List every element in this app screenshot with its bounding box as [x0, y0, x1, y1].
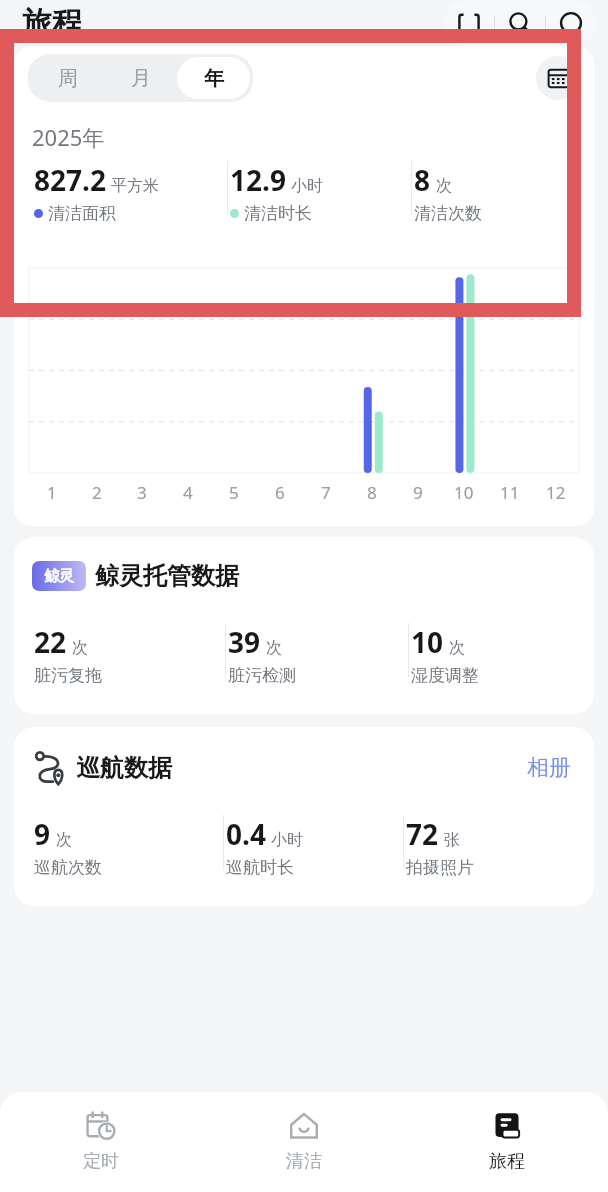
staticText: 9 — [413, 481, 423, 504]
button[interactable]: 旅程 — [405, 1092, 608, 1192]
staticText: 次 — [56, 830, 72, 850]
staticText: 相册 — [527, 754, 571, 782]
staticText: 4 — [183, 481, 193, 504]
button[interactable]: 周 — [31, 57, 104, 99]
button[interactable]: Profile — [546, 0, 596, 46]
staticText: 8 — [367, 481, 377, 504]
staticText: 平方米 — [111, 176, 159, 196]
staticText: 旅程 — [22, 4, 82, 42]
staticText: 巡航时长 — [226, 857, 294, 878]
staticText: 次 — [436, 176, 452, 196]
staticText: 巡航数据 — [76, 753, 172, 783]
staticText: 3 — [137, 481, 147, 504]
staticText: 827.2 — [34, 161, 106, 199]
staticText: 次 — [72, 638, 88, 658]
staticText: 张 — [444, 830, 460, 850]
staticText: 12 — [546, 481, 566, 504]
staticText: 22 — [34, 623, 67, 661]
staticText: 脏污复拖 — [34, 665, 102, 686]
staticText: 2025年 — [32, 122, 105, 152]
staticText: 年 — [204, 66, 224, 91]
staticText: 小时 — [271, 830, 303, 850]
button[interactable]: 相册 — [522, 749, 576, 787]
staticText: 7 — [321, 481, 331, 504]
button[interactable]: Calendar — [536, 56, 580, 100]
staticText: 鲸灵 — [44, 567, 74, 586]
staticText: 清洁 — [286, 1150, 322, 1173]
staticText: 9 — [34, 815, 51, 853]
staticText: 12.9 — [230, 161, 286, 199]
staticText: 8 — [414, 161, 431, 199]
button[interactable]: Devices — [444, 0, 494, 46]
staticText: 2 — [92, 481, 102, 504]
staticText: 小时 — [291, 176, 323, 196]
button[interactable]: 定时 — [0, 1092, 202, 1192]
staticText: 鲸灵托管数据 — [95, 561, 239, 591]
staticText: 1 — [47, 481, 57, 504]
button[interactable]: Search — [495, 0, 545, 46]
staticText: 周 — [58, 66, 78, 91]
button[interactable]: 月 — [104, 57, 177, 99]
staticText: 72 — [406, 815, 439, 853]
staticText: 清洁面积 — [48, 203, 116, 224]
staticText: 39 — [228, 623, 261, 661]
staticText: 6 — [275, 481, 285, 504]
staticText: 湿度调整 — [411, 665, 479, 686]
staticText: 5 — [229, 481, 239, 504]
staticText: 定时 — [83, 1150, 119, 1173]
staticText: 清洁时长 — [244, 203, 312, 224]
staticText: 0.4 — [226, 815, 266, 853]
button[interactable]: 清洁 — [202, 1092, 405, 1192]
staticText: 月 — [131, 66, 151, 91]
button[interactable]: 年 — [177, 57, 250, 99]
staticText: 10 — [454, 481, 474, 504]
staticText: 拍摄照片 — [406, 857, 474, 878]
staticText: 清洁次数 — [414, 203, 482, 224]
staticText: 旅程 — [489, 1150, 525, 1173]
staticText: 11 — [500, 481, 520, 504]
staticText: 10 — [411, 623, 444, 661]
button[interactable]: 鲸灵 — [14, 537, 594, 714]
staticText: 巡航次数 — [34, 857, 102, 878]
staticText: 次 — [449, 638, 465, 658]
staticText: 次 — [266, 638, 282, 658]
staticText: 脏污检测 — [228, 665, 296, 686]
